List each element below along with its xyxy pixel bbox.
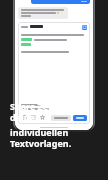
button[interactable]: Add attachment bbox=[18, 22, 90, 124]
button[interactable] bbox=[73, 115, 87, 121]
staticText: individuellen Textvorlagen. bbox=[10, 126, 103, 149]
button[interactable]: Add attachment bbox=[21, 114, 28, 121]
button[interactable] bbox=[31, 0, 90, 4]
button[interactable] bbox=[18, 7, 68, 19]
button[interactable] bbox=[51, 115, 71, 121]
button[interactable]: Favorite bbox=[39, 114, 46, 121]
staticText: Spare Zeit mit deinen bbox=[10, 100, 103, 123]
button[interactable]: Insert image bbox=[30, 114, 37, 121]
